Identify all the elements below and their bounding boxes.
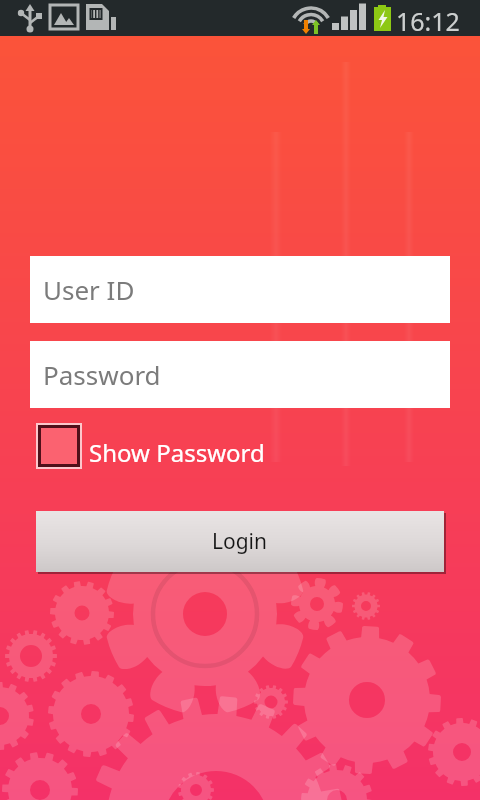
staticText: Login [212,527,268,556]
button[interactable]: Password [30,341,450,408]
staticText: Show Password [89,436,265,469]
button[interactable]: User ID [30,256,450,323]
button[interactable]: Show Password [36,423,265,469]
staticText: User ID [43,272,135,307]
button[interactable]: Login [36,511,444,572]
staticText: Password [43,357,161,392]
staticText: 16:12 [396,4,460,38]
